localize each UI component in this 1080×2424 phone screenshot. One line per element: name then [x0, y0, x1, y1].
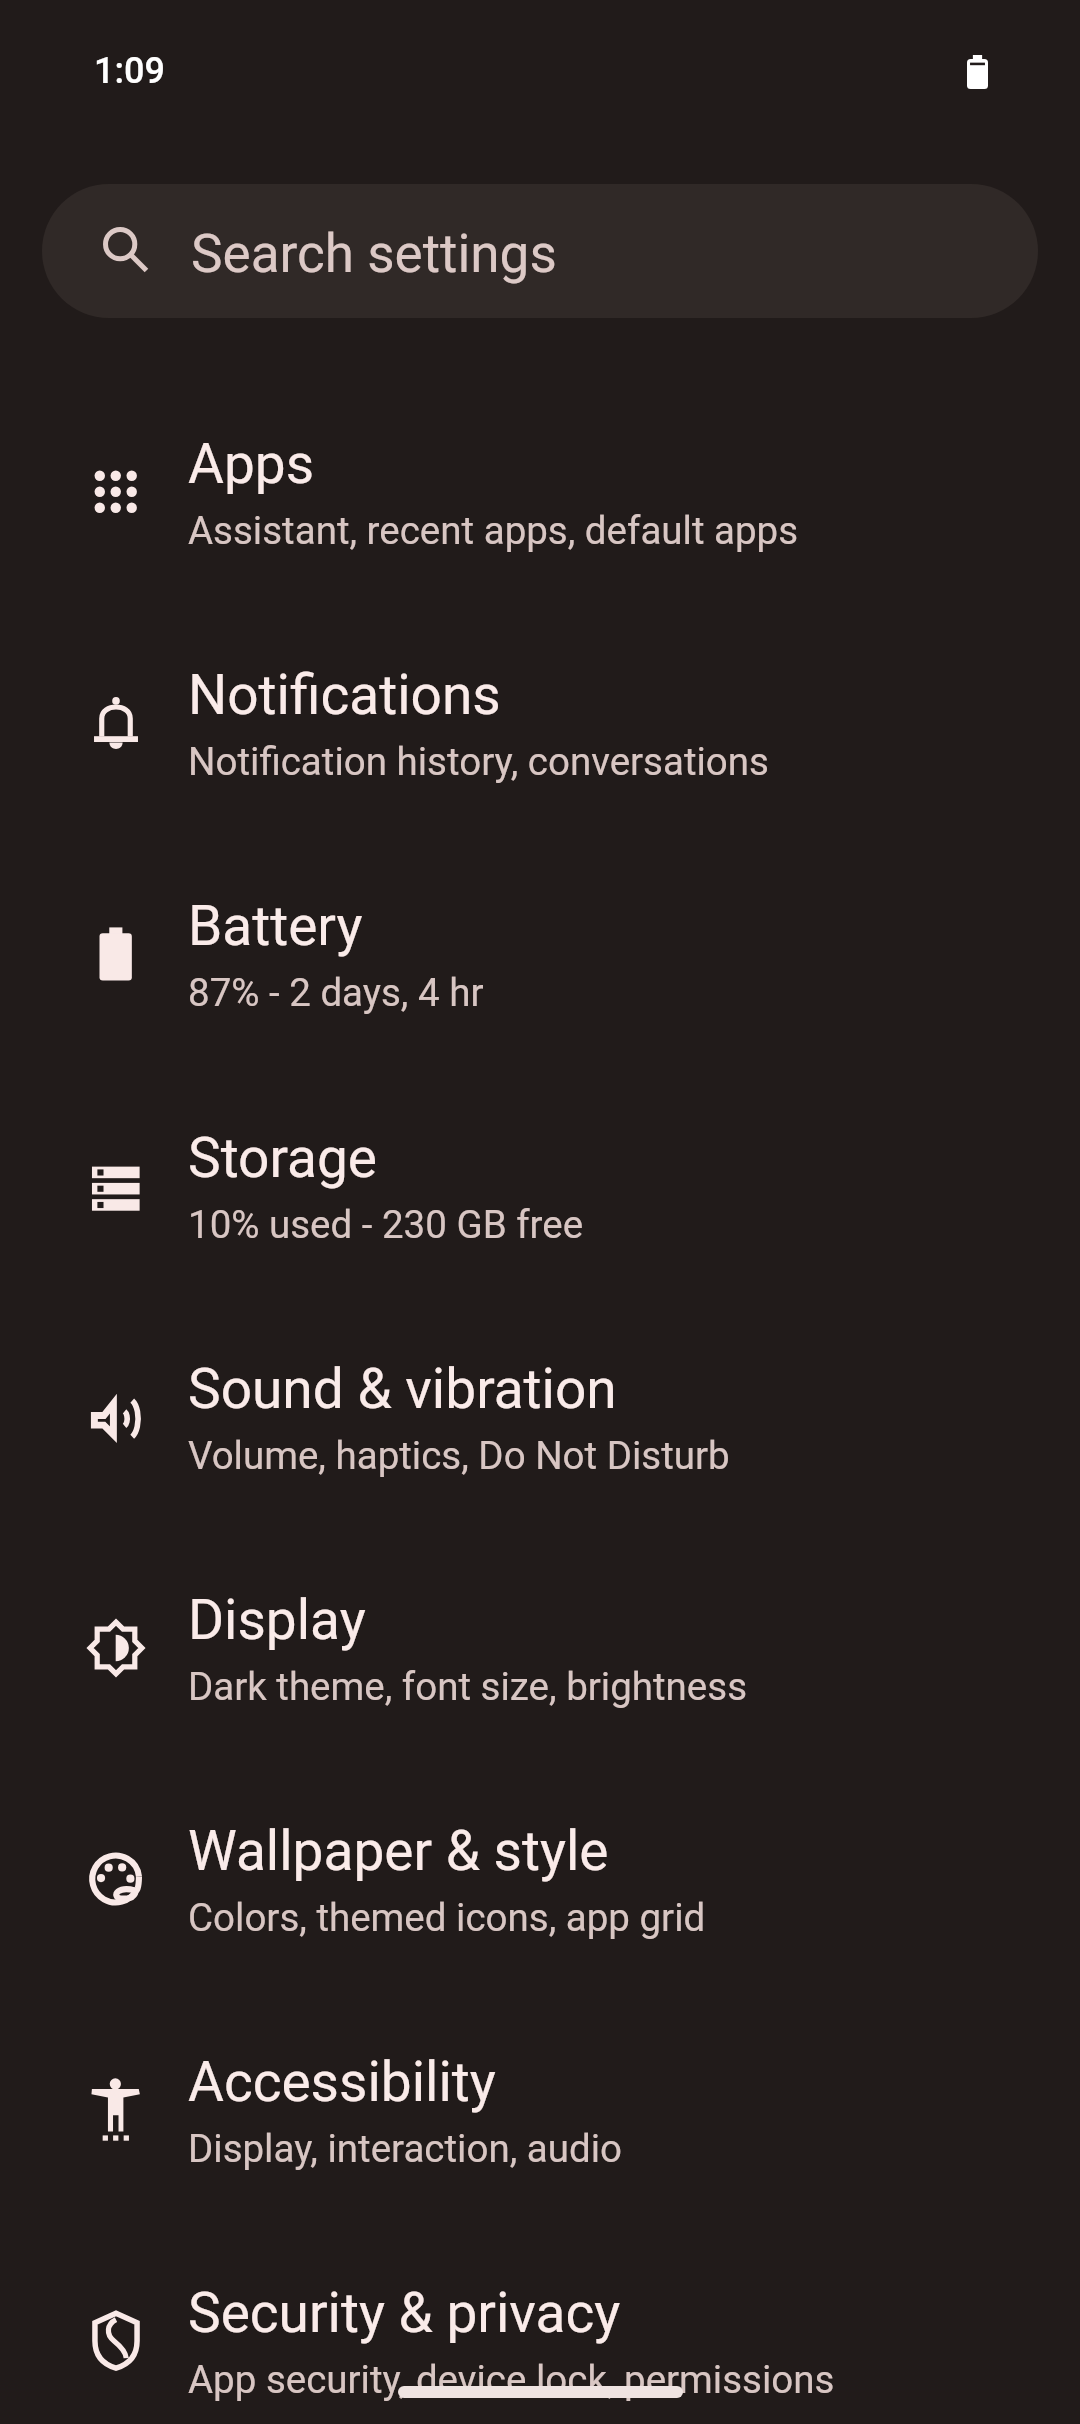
staticText: Sound & vibration	[188, 1357, 617, 1421]
button[interactable]: Apps	[0, 396, 1080, 627]
button[interactable]: Sound & vibration	[0, 1321, 1080, 1552]
button[interactable]: Wallpaper & style	[0, 1783, 1080, 2014]
button[interactable]: Battery	[0, 858, 1080, 1089]
staticText: 10% used - 230 GB free	[188, 1202, 584, 1247]
button[interactable]: Security & privacy	[0, 2245, 1080, 2424]
button[interactable]: Notifications	[0, 627, 1080, 858]
staticText: App security, device lock, permissions	[188, 2357, 835, 2402]
staticText: 1:09	[94, 50, 165, 92]
staticText: Battery	[188, 894, 363, 958]
staticText: Assistant, recent apps, default apps	[188, 508, 799, 553]
other: Home gesture handle	[398, 2386, 683, 2398]
button[interactable]: Storage	[0, 1090, 1080, 1321]
staticText: Security & privacy	[188, 2281, 621, 2345]
staticText: Display	[188, 1588, 366, 1652]
staticText: Notifications	[188, 663, 501, 727]
staticText: Search settings	[191, 223, 557, 285]
staticText: Storage	[188, 1126, 378, 1190]
staticText: Notification history, conversations	[188, 739, 769, 784]
button[interactable]: Accessibility	[0, 2014, 1080, 2245]
staticText: Volume, haptics, Do Not Disturb	[188, 1433, 730, 1478]
staticText: Accessibility	[188, 2050, 496, 2114]
staticText: Display, interaction, audio	[188, 2126, 622, 2171]
staticText: Dark theme, font size, brightness	[188, 1664, 748, 1709]
staticText: Colors, themed icons, app grid	[188, 1895, 706, 1940]
button[interactable]: Search settings	[42, 184, 1038, 318]
staticText: Apps	[188, 432, 315, 496]
staticText: 87% - 2 days, 4 hr	[188, 970, 484, 1015]
staticText: Wallpaper & style	[188, 1819, 609, 1883]
button[interactable]: Display	[0, 1552, 1080, 1783]
